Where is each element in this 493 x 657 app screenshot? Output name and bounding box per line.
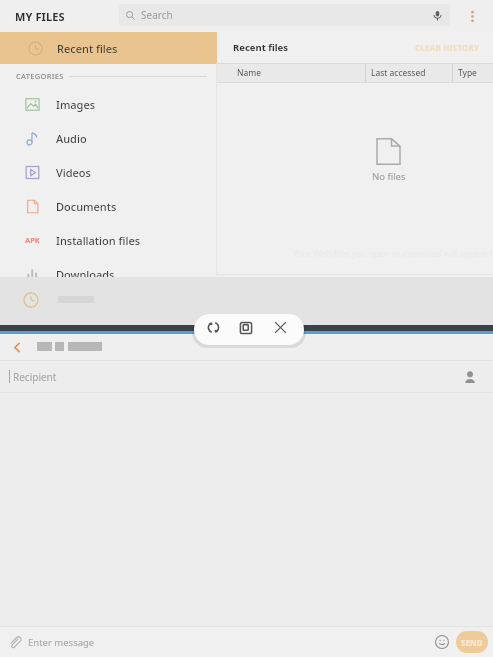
staticText: APK [25,235,40,245]
staticText: CATEGORIES [16,71,64,81]
button[interactable]: Audio [0,121,216,155]
button[interactable]: APK [0,223,216,257]
staticText: Recent files [57,41,118,56]
staticText: Recent files [233,41,289,54]
staticText: Search [141,8,173,22]
button[interactable]: Rotate [200,314,227,341]
button[interactable]: Emoji [431,631,453,653]
button[interactable]: More options [458,0,486,32]
staticText: Enter message [28,636,95,649]
staticText: No files [372,170,406,183]
staticText: CLEAR HISTORY [415,42,480,53]
button[interactable]: Navigate up [0,334,34,361]
button[interactable]: Documents [0,189,216,223]
button[interactable]: Images [0,87,216,121]
button[interactable]: Contacts [455,362,485,392]
staticText: Last accessed [371,67,426,79]
staticText: Videos [56,165,91,180]
button[interactable]: Downloads [0,257,216,291]
staticText: Recipient [13,370,57,384]
button[interactable]: Pop up view [232,314,259,341]
button[interactable]: Recent files [0,32,216,64]
staticText: Documents [56,199,117,214]
staticText: Downloads [56,267,115,282]
staticText: Images [56,97,96,112]
staticText: Name [237,67,261,79]
staticText: Type [458,67,477,79]
button[interactable]: Attach [4,631,26,653]
button[interactable]: CLEAR HISTORY [410,36,485,59]
button[interactable]: Videos [0,155,216,189]
button[interactable]: Close [267,314,294,341]
button[interactable]: Search [119,4,450,26]
staticText: Audio [56,131,87,146]
staticText: MY FILES [15,9,65,24]
staticText: Installation files [56,233,141,248]
staticText: SEND [461,637,483,648]
button[interactable]: SEND [456,631,488,653]
